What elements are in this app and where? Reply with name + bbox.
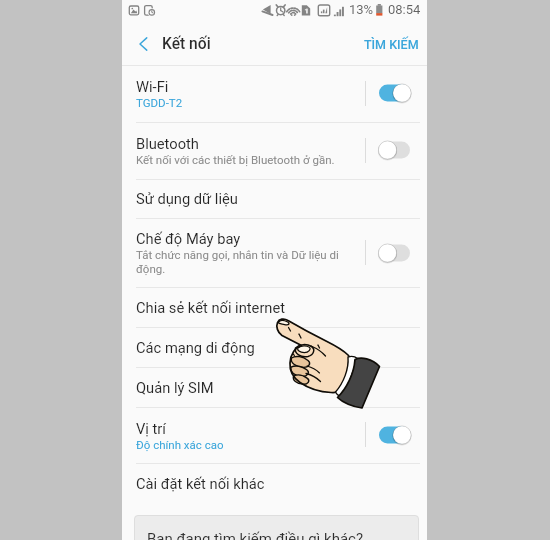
staticText: Chế độ Máy bay [136, 230, 241, 247]
staticText: Vị trí [136, 420, 166, 437]
staticText: Cài đặt kết nối khác [136, 475, 265, 492]
staticText: TGDD-T2 [136, 96, 183, 109]
staticText: Bluetooth [136, 135, 199, 152]
button[interactable]: Back [126, 30, 154, 58]
staticText: Bạn đang tìm kiếm điều gì khác? [147, 530, 364, 540]
staticText: Kết nối với các thiết bị Bluetooth ở gần… [136, 153, 335, 166]
button[interactable]: Turn on Bluetooth [377, 139, 413, 161]
button[interactable]: Bạn đang tìm kiếm điều gì khác? [134, 515, 419, 540]
button[interactable]: Chia sẻ kết nối internet [122, 287, 427, 327]
button[interactable]: Turn off Vị trí [377, 424, 413, 446]
staticText: Các mạng di động [136, 339, 255, 356]
staticText: Quản lý SIM [136, 379, 214, 396]
button[interactable]: TÌM KIẾM [360, 32, 423, 57]
button[interactable]: Wi-Fi [122, 65, 427, 122]
staticText: Sử dụng dữ liệu [136, 190, 238, 207]
button[interactable]: Vị trí [122, 407, 427, 463]
button[interactable]: Quản lý SIM [122, 367, 427, 407]
button[interactable]: Chế độ Máy bay [122, 218, 427, 287]
button[interactable]: Turn off Wi-Fi [377, 82, 413, 104]
button[interactable]: Bluetooth [122, 122, 427, 179]
staticText: 13% [349, 2, 374, 17]
staticText: Kết nối [162, 35, 211, 53]
staticText: TÌM KIẾM [364, 37, 419, 52]
staticText: Độ chính xác cao [136, 438, 224, 451]
staticText: Tắt chức năng gọi, nhắn tin và Dữ liệu d… [136, 248, 343, 276]
staticText: Wi-Fi [136, 78, 169, 95]
button[interactable]: Sử dụng dữ liệu [122, 178, 427, 218]
button[interactable]: Các mạng di động [122, 327, 427, 367]
button[interactable]: Cài đặt kết nối khác [122, 463, 427, 504]
button[interactable]: Turn on Chế độ Máy bay [377, 242, 413, 264]
staticText: Chia sẻ kết nối internet [136, 299, 286, 316]
staticText: 08:54 [388, 2, 421, 17]
